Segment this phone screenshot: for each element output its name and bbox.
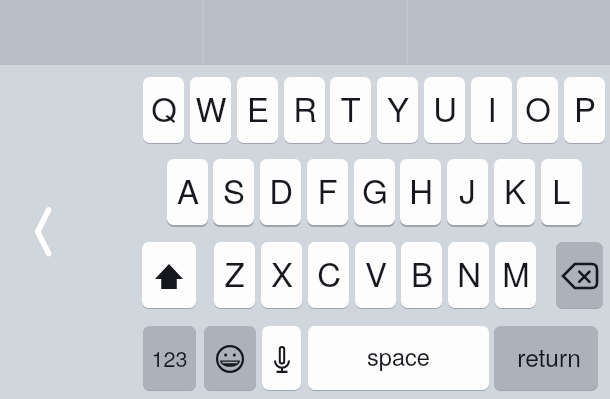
button[interactable]: E <box>237 77 278 143</box>
button[interactable]: X <box>261 242 302 308</box>
staticText: V <box>365 249 387 296</box>
staticText: A <box>177 166 199 213</box>
button[interactable]: D <box>260 159 301 225</box>
button[interactable]: K <box>494 159 535 225</box>
staticText: O <box>525 84 551 131</box>
button[interactable]: M <box>495 242 536 308</box>
staticText: B <box>411 249 433 296</box>
staticText: Q <box>151 84 177 131</box>
button[interactable]: G <box>354 159 395 225</box>
staticText: K <box>504 166 526 213</box>
staticText: M <box>502 249 530 296</box>
button[interactable]: Shift <box>142 242 196 308</box>
button[interactable]: W <box>190 77 231 143</box>
staticText: 123 <box>151 342 188 373</box>
staticText: P <box>574 84 596 131</box>
button[interactable]: R <box>284 77 325 143</box>
button[interactable]: Emoji <box>204 326 256 390</box>
staticText: H <box>409 166 433 213</box>
button[interactable]: Backspace <box>556 242 603 308</box>
button[interactable]: V <box>355 242 396 308</box>
staticText: Z <box>224 249 245 296</box>
button[interactable]: O <box>517 77 558 143</box>
staticText: T <box>340 84 361 131</box>
staticText: U <box>433 84 457 131</box>
staticText: Y <box>387 84 409 131</box>
staticText: S <box>223 166 245 213</box>
button[interactable]: S <box>213 159 254 225</box>
button[interactable]: C <box>308 242 349 308</box>
button[interactable]: space <box>308 326 489 390</box>
staticText: C <box>317 249 341 296</box>
button[interactable]: I <box>471 77 512 143</box>
staticText: return <box>517 339 581 374</box>
staticText: X <box>271 249 293 296</box>
button[interactable]: 123 <box>143 326 196 390</box>
button[interactable]: Z <box>214 242 255 308</box>
button[interactable]: H <box>400 159 441 225</box>
button[interactable]: Q <box>143 77 184 143</box>
staticText: N <box>457 249 481 296</box>
staticText: space <box>367 339 430 373</box>
staticText: I <box>487 84 497 131</box>
button[interactable]: F <box>307 159 348 225</box>
button[interactable]: L <box>541 159 582 225</box>
button[interactable]: A <box>167 159 208 225</box>
button[interactable]: Y <box>377 77 418 143</box>
staticText: E <box>247 84 269 131</box>
button[interactable]: B <box>401 242 442 308</box>
staticText: G <box>362 166 388 213</box>
button[interactable]: N <box>448 242 489 308</box>
staticText: W <box>195 84 227 131</box>
button[interactable]: return <box>494 326 598 390</box>
staticText: L <box>552 166 571 213</box>
staticText: R <box>293 84 317 131</box>
button[interactable]: Dictation <box>262 326 301 390</box>
staticText: J <box>459 166 476 213</box>
button[interactable]: Collapse keyboard <box>24 196 60 268</box>
button[interactable]: P <box>564 77 605 143</box>
button[interactable]: T <box>330 77 371 143</box>
staticText: F <box>317 166 338 213</box>
button[interactable]: U <box>424 77 465 143</box>
staticText: D <box>269 166 293 213</box>
button[interactable]: J <box>447 159 488 225</box>
